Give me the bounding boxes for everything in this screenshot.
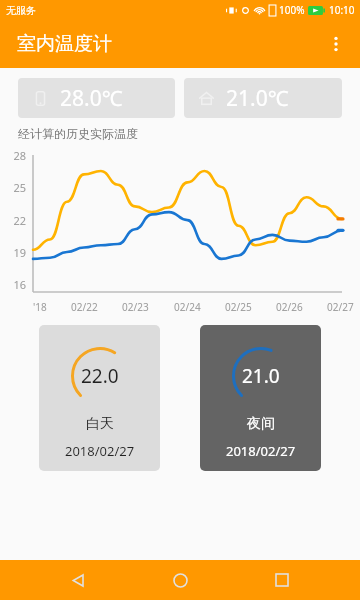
staticText: 25 (0, 180, 26, 195)
staticText: 2018/02/27 (226, 442, 296, 460)
button[interactable]: 28.0℃ (18, 78, 175, 118)
button[interactable]: 21.0℃ (184, 78, 342, 118)
staticText: 无服务 (6, 4, 36, 17)
staticText: 16 (0, 277, 26, 292)
staticText: 02/24 (174, 300, 201, 314)
staticText: 10:10 (329, 3, 355, 17)
button[interactable]: 22.0 (39, 325, 160, 471)
staticText: 02/23 (122, 300, 149, 314)
staticText: 02/26 (276, 300, 303, 314)
staticText: 19 (0, 245, 26, 260)
button[interactable]: More options (316, 24, 356, 64)
staticText: 22.0 (81, 363, 119, 389)
staticText: 经计算的历史实际温度 (18, 126, 138, 141)
staticText: 22 (0, 213, 26, 228)
staticText: 室内温度计 (17, 32, 112, 56)
staticText: 28.0℃ (60, 84, 123, 113)
staticText: 02/22 (71, 300, 98, 314)
staticText: 02/25 (225, 300, 252, 314)
staticText: 100% (279, 3, 305, 17)
staticText: 夜间 (247, 415, 275, 433)
button[interactable]: Back (54, 560, 102, 600)
staticText: 28 (0, 148, 26, 163)
staticText: 白天 (86, 415, 114, 433)
button[interactable]: Home (156, 560, 204, 600)
button[interactable]: Recents (258, 560, 306, 600)
button[interactable]: 21.0 (200, 325, 321, 471)
staticText: '18 (33, 300, 47, 314)
staticText: 02/27 (327, 300, 354, 314)
staticText: 21.0℃ (226, 84, 289, 113)
staticText: 2018/02/27 (65, 442, 135, 460)
staticText: 21.0 (242, 363, 280, 389)
